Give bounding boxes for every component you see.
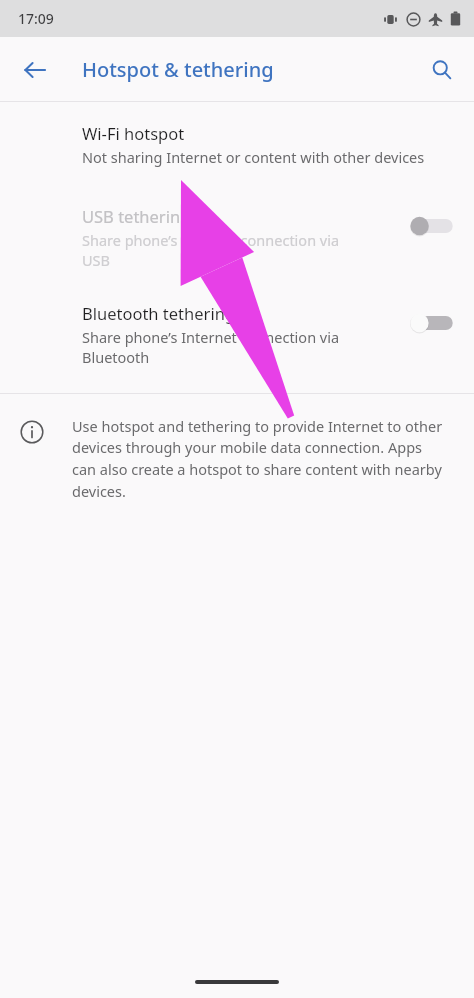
button[interactable]: Wi-Fi hotspot <box>0 122 474 167</box>
staticText: USB tethering <box>82 205 191 227</box>
staticText: Bluetooth tethering <box>82 302 235 324</box>
button[interactable]: Bluetooth tethering <box>0 302 474 367</box>
staticText: Wi-Fi hotspot <box>82 122 185 144</box>
button[interactable]: Search <box>421 49 463 91</box>
staticText: 17:09 <box>18 9 54 28</box>
staticText: USB <box>82 250 110 270</box>
staticText: Share phone’s Internet connection via <box>82 327 340 347</box>
button[interactable]: Toggle Bluetooth tethering <box>408 308 460 338</box>
staticText: Hotspot & tethering <box>82 56 274 83</box>
button[interactable]: Back <box>14 49 56 91</box>
staticText: Bluetooth <box>82 347 150 367</box>
staticText: Share phone’s Internet connection via <box>82 230 340 250</box>
button[interactable]: Toggle USB tethering <box>408 211 460 241</box>
button[interactable]: USB tethering <box>0 205 474 270</box>
staticText: Use hotspot and tethering to provide Int… <box>72 416 446 501</box>
staticText: Not sharing Internet or content with oth… <box>82 147 425 167</box>
